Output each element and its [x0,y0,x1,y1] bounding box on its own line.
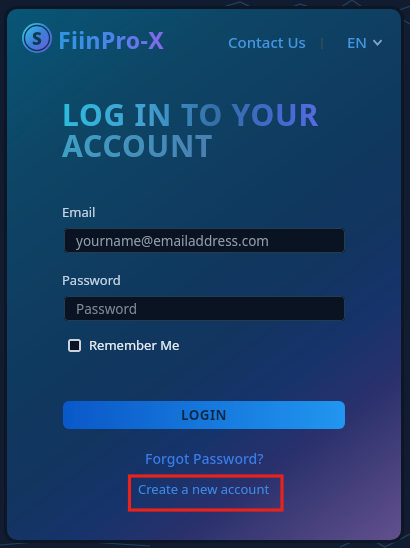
staticText: Remember Me [89,336,180,354]
staticText: S [32,27,42,50]
button[interactable]: Remember Me [68,336,180,354]
staticText: yourname@emailaddress.com [76,232,269,250]
staticText: ACCOUNT [62,125,214,166]
staticText: FiinPro-X [58,24,165,55]
button[interactable]: EN [341,26,388,58]
button[interactable]: Contact Us [222,26,312,58]
staticText: Contact Us [228,32,306,52]
button[interactable]: Forgot Password? [141,445,268,472]
staticText: Email [62,203,96,221]
button[interactable]: Create a new account [134,476,274,502]
staticText: Password [62,271,121,289]
button[interactable]: yourname@emailaddress.com [64,228,345,253]
staticText: EN [347,32,367,52]
staticText: LOG IN TO YOUR [62,94,319,135]
staticText: Password [76,300,138,318]
staticText: Create a new account [138,480,270,498]
button[interactable]: Password [64,296,345,321]
button[interactable]: LOGIN [63,401,345,429]
staticText: LOGIN [181,406,227,424]
staticText: Forgot Password? [145,449,264,468]
